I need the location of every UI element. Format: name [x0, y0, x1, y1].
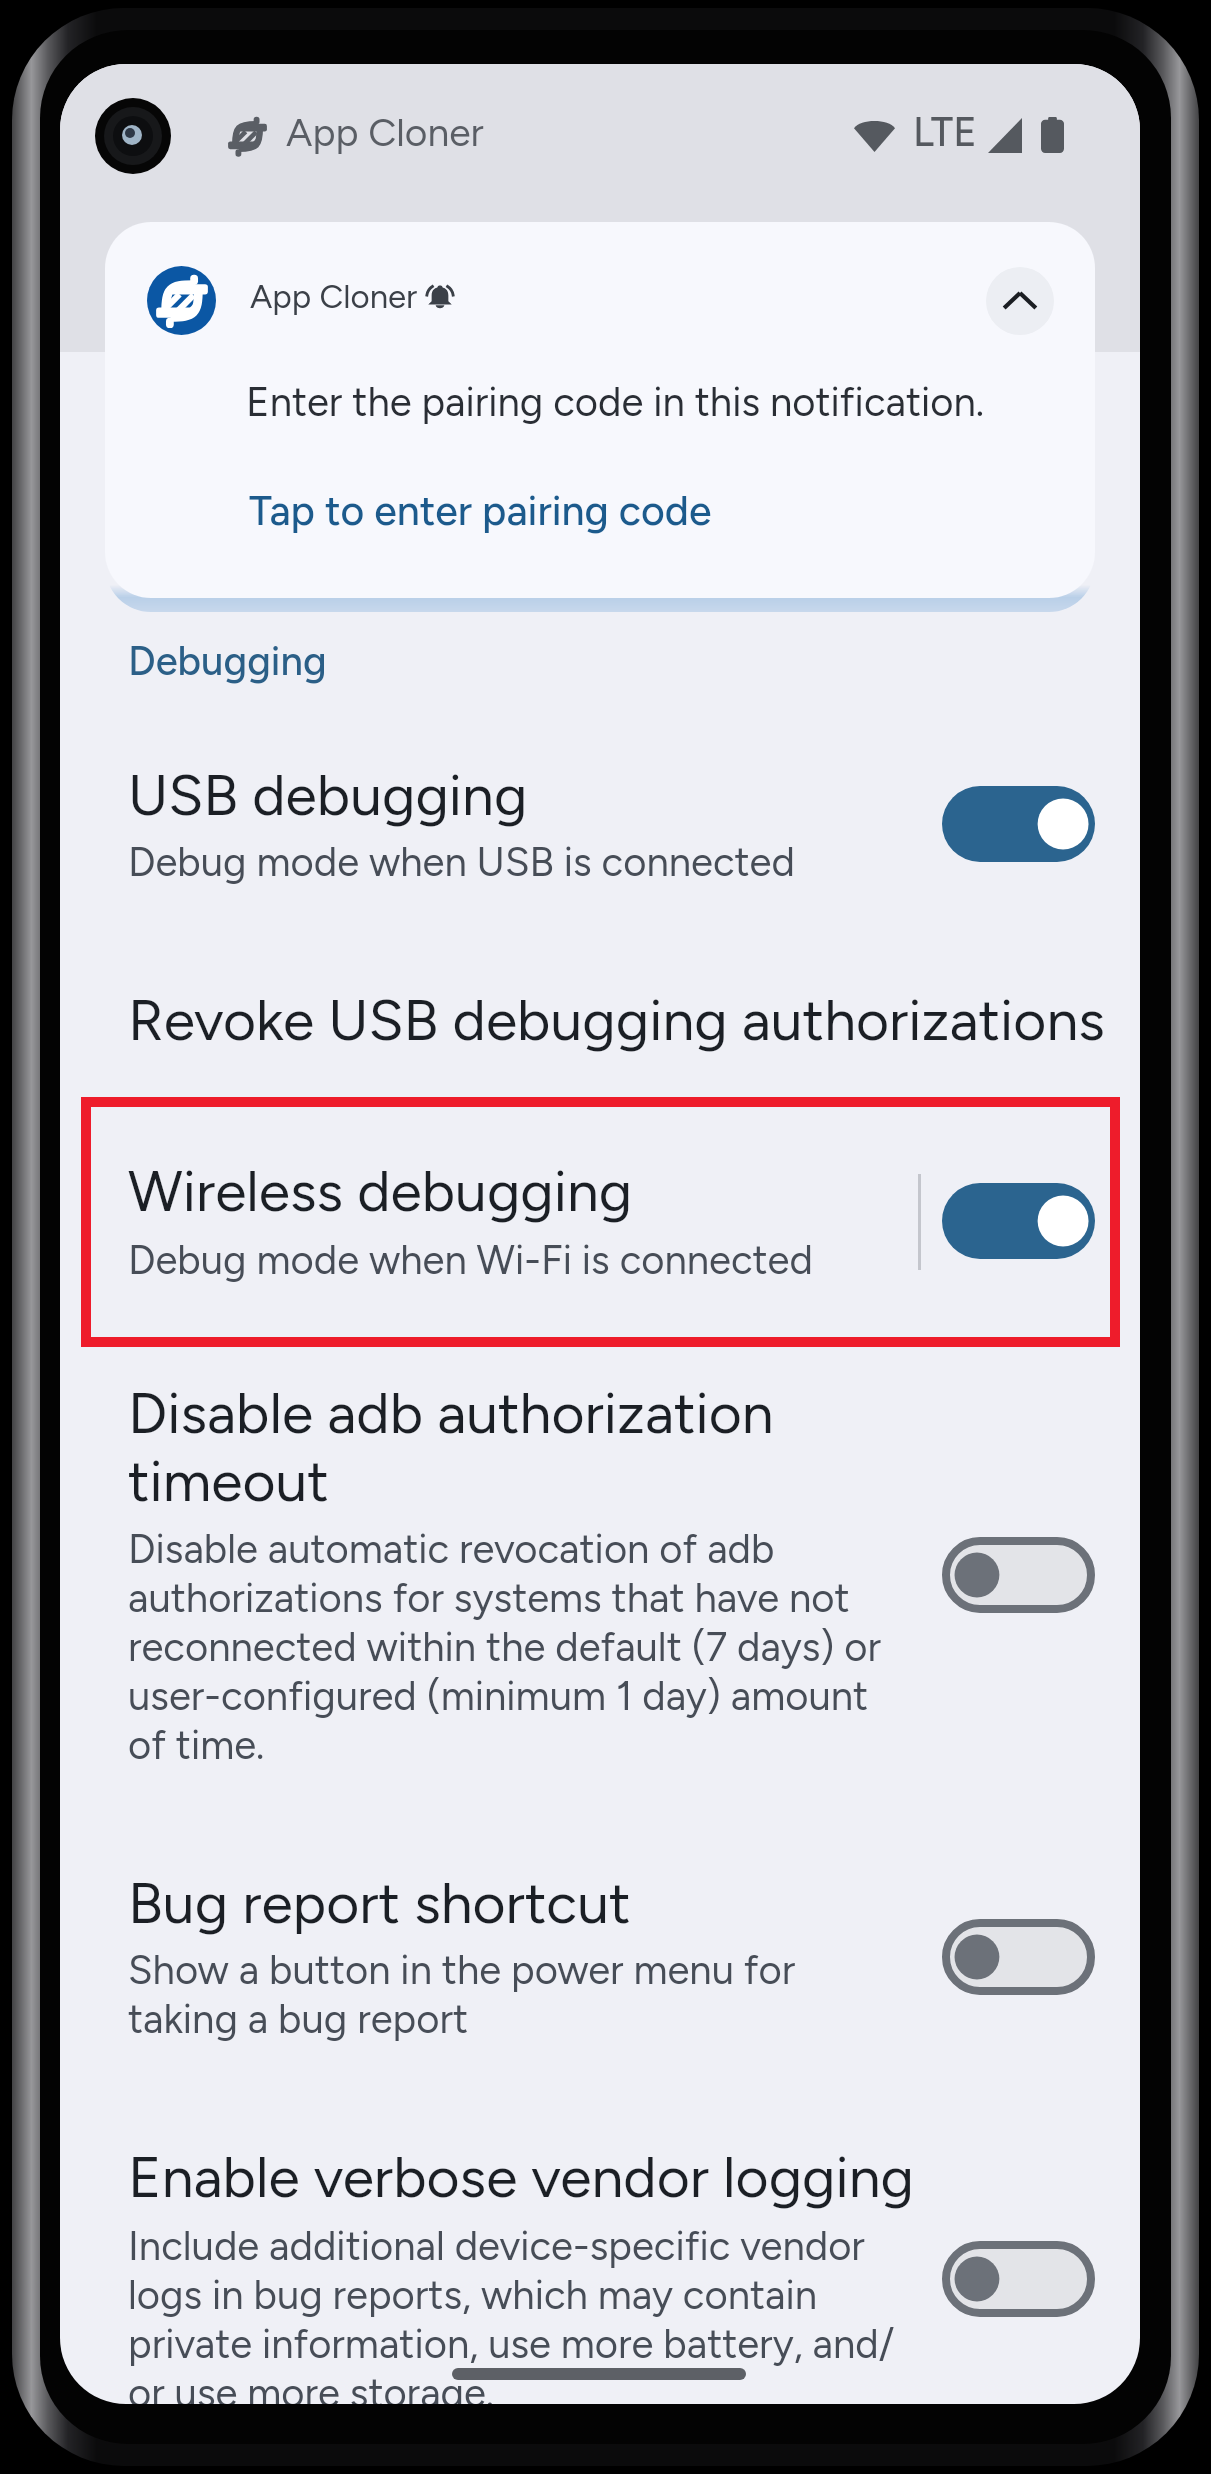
staticText: Disable automatic revocation of adb auth… — [128, 1524, 1028, 1769]
button[interactable]: Switch on — [942, 1183, 1095, 1259]
button[interactable] — [60, 2149, 1140, 2404]
staticText: LTE — [913, 108, 977, 156]
staticText: Debug mode when USB is connected — [128, 837, 948, 886]
staticText: Show a button in the power menu for taki… — [128, 1945, 1028, 2043]
button[interactable] — [60, 989, 1140, 1099]
button[interactable]: Switch off — [942, 1537, 1095, 1613]
staticText: Bug report shortcut — [128, 1869, 1028, 1937]
button[interactable]: Switch off — [942, 1919, 1095, 1995]
staticText: App Cloner — [250, 277, 418, 317]
staticText: Include additional device-specific vendo… — [128, 2221, 1028, 2404]
staticText: Debug mode when Wi-Fi is connected — [128, 1235, 888, 1284]
staticText: Disable adb authorization timeout — [128, 1379, 1028, 1515]
staticText: Enable verbose vendor logging — [128, 2143, 1028, 2211]
button[interactable]: App Cloner — [105, 222, 1095, 598]
button[interactable]: Tap to enter pairing code — [249, 486, 712, 535]
staticText: Enter the pairing code in this notificat… — [246, 377, 985, 426]
button[interactable]: Switch off — [942, 2241, 1095, 2317]
staticText: USB debugging — [128, 761, 1028, 829]
button[interactable]: Collapse notification — [986, 267, 1054, 335]
button[interactable] — [60, 1384, 1140, 1744]
button[interactable]: Debugging — [128, 636, 327, 685]
button[interactable] — [60, 1874, 1140, 2104]
button[interactable]: Home — [452, 2368, 746, 2380]
staticText: App Cloner — [286, 109, 484, 156]
button[interactable] — [81, 1097, 1120, 1347]
staticText: Revoke USB debugging authorizations — [128, 986, 1128, 1054]
button[interactable] — [60, 764, 1140, 934]
button[interactable]: Switch on — [942, 786, 1095, 862]
staticText: Wireless debugging — [128, 1157, 888, 1225]
